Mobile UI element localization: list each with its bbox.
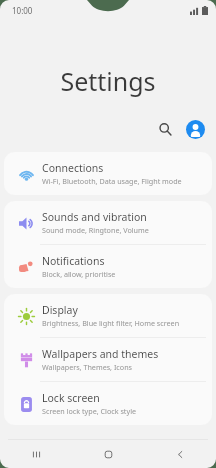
button[interactable]: Back [144,440,216,468]
button[interactable]: Recents [0,440,72,468]
button[interactable]: Home [72,440,144,468]
staticText: Lock screen [42,391,100,405]
staticText: Wallpapers, Themes, Icons [42,362,133,372]
button[interactable]: Notifications [4,245,212,288]
staticText: Settings [60,64,156,98]
staticText: Sounds and vibration [42,210,147,224]
staticText: Notifications [42,254,105,268]
staticText: Brightness, Blue light filter, Home scre… [42,318,180,328]
button[interactable]: Wallpapers and themes [4,338,212,381]
staticText: Wallpapers and themes [42,347,159,361]
staticText: Block, allow, prioritise [42,269,116,279]
staticText: Screen lock type, Clock style [42,406,137,416]
staticText: Wi-Fi, Bluetooth, Data usage, Flight mod… [42,176,182,186]
staticText: 10:00 [12,5,33,16]
button[interactable]: Account [182,116,208,142]
staticText: Sound mode, Ringtone, Volume [42,225,149,235]
button[interactable]: Search [152,116,178,142]
button[interactable]: Lock screen [4,382,212,425]
staticText: Connections [42,161,104,175]
button[interactable]: Sounds and vibration [4,201,212,244]
button[interactable]: Display [4,294,212,337]
staticText: Display [42,303,78,317]
button[interactable]: Connections [4,152,212,195]
